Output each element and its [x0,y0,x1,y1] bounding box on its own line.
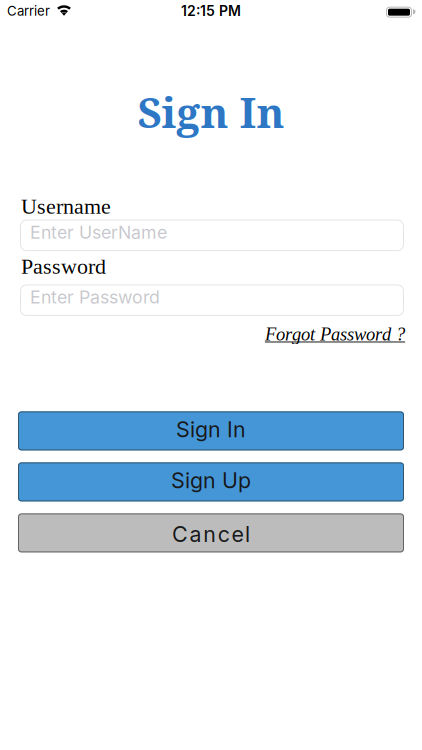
button[interactable]: Enter Password [20,284,404,316]
staticText: Forgot Password ? [265,324,405,344]
staticText: Sign Up [171,467,251,493]
button[interactable]: Enter UserName [20,220,404,251]
staticText: 12:15 PM [181,2,241,19]
staticText: Enter UserName [30,222,167,243]
staticText: Password [21,254,106,278]
staticText: Username [21,194,111,219]
button[interactable]: Forgot Password ? [265,324,405,344]
staticText: Carrier [7,3,50,19]
staticText: Sign In [137,83,284,140]
button[interactable]: Sign In [18,411,404,450]
button[interactable]: Cancel [18,513,404,552]
staticText: Enter Password [30,286,160,308]
button[interactable]: Sign Up [18,462,404,501]
staticText: Sign In [176,416,246,442]
staticText: Cancel [172,521,250,547]
